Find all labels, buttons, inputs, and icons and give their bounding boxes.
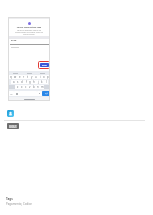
staticText: u <box>35 75 37 79</box>
button[interactable]: u <box>34 75 38 79</box>
button[interactable]: i <box>38 75 42 79</box>
staticText: Pagamento, Codice <box>6 202 32 206</box>
staticText: g <box>29 80 31 84</box>
button[interactable]: SEGUI <box>7 123 19 129</box>
button[interactable]: o <box>42 75 46 79</box>
button[interactable]: y <box>30 75 34 79</box>
button[interactable]: p <box>46 75 50 79</box>
staticText: b <box>33 85 35 89</box>
staticText: z <box>17 85 19 89</box>
staticText: h <box>33 80 35 84</box>
button[interactable]: l <box>44 80 48 84</box>
staticText: SEGUI <box>9 125 17 128</box>
staticText: e <box>19 75 21 79</box>
staticText: We sent a verification code to the phone… <box>15 29 43 35</box>
staticText: y <box>31 75 33 79</box>
button[interactable]: z <box>15 85 20 89</box>
button[interactable]: q <box>8 75 13 79</box>
staticText: q <box>10 75 12 79</box>
staticText: v <box>29 85 31 89</box>
button[interactable]: Emoji <box>14 91 19 96</box>
staticText: d <box>21 80 23 84</box>
staticText: r <box>23 75 25 79</box>
staticText: Invia <box>42 64 47 67</box>
staticText: 3749 <box>11 39 17 42</box>
staticText: l <box>46 80 47 84</box>
button[interactable]: s <box>16 80 20 84</box>
button[interactable]: b <box>32 85 36 89</box>
button[interactable]: d <box>20 80 24 84</box>
button[interactable]: g <box>28 80 32 84</box>
button[interactable]: Invia <box>40 63 49 67</box>
button[interactable]: x <box>20 85 24 89</box>
staticText: w <box>14 75 17 79</box>
staticText: n <box>37 85 39 89</box>
staticText: o <box>43 75 45 79</box>
button[interactable]: m <box>40 85 44 89</box>
staticText: t <box>27 75 29 79</box>
staticText: m <box>41 85 44 89</box>
staticText: s <box>17 80 19 84</box>
button[interactable]: w <box>13 75 18 79</box>
button[interactable]: Symbols <box>8 91 14 96</box>
button[interactable]: Period <box>37 91 42 96</box>
staticText: x <box>21 85 23 89</box>
button[interactable]: h <box>32 80 36 84</box>
button[interactable]: f <box>24 80 28 84</box>
staticText: j <box>38 80 39 84</box>
button[interactable]: j <box>36 80 40 84</box>
button[interactable]: t <box>26 75 30 79</box>
button[interactable]: r <box>22 75 26 79</box>
staticText: p <box>47 75 49 79</box>
button[interactable]: Enter <box>42 91 50 96</box>
button[interactable]: k <box>40 80 44 84</box>
staticText: Carrier confirmation code <box>8 26 50 29</box>
button[interactable]: a <box>11 80 16 84</box>
button[interactable]: e <box>18 75 22 79</box>
button[interactable]: n <box>36 85 40 89</box>
button[interactable]: v <box>28 85 32 89</box>
staticText: ?12 <box>10 93 13 95</box>
button[interactable]: c <box>24 85 28 89</box>
staticText: Tags <box>6 197 13 201</box>
button[interactable]: App icon <box>7 110 14 117</box>
staticText: k <box>41 80 43 84</box>
staticText: c <box>25 85 27 89</box>
staticText: i <box>40 75 41 79</box>
staticText: a <box>13 80 15 84</box>
staticText: f <box>26 80 27 84</box>
